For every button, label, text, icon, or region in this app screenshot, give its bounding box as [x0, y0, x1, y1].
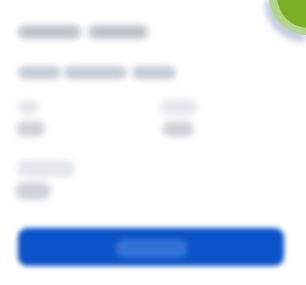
button[interactable]: [18, 228, 284, 266]
button[interactable]: Profile: [269, 0, 306, 35]
